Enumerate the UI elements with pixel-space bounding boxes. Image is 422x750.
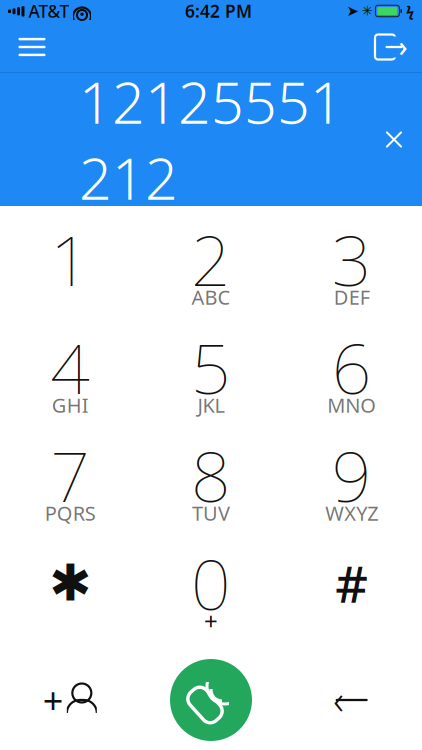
staticText: 6 xyxy=(332,321,372,413)
staticText: ✳ xyxy=(361,3,372,18)
staticText: 2 xyxy=(191,213,231,305)
staticText: ✱ xyxy=(49,554,91,612)
button[interactable]: 6 xyxy=(281,322,422,430)
staticText: PQRS xyxy=(45,500,96,526)
staticText: + xyxy=(204,605,218,637)
staticText: + xyxy=(43,676,64,724)
button[interactable]: Add contact xyxy=(0,654,141,746)
button[interactable]: 7 xyxy=(0,430,141,538)
button[interactable]: ✱ xyxy=(0,538,141,646)
staticText: GHI xyxy=(52,392,89,418)
staticText: › xyxy=(398,27,407,65)
staticText: DEF xyxy=(334,284,370,310)
button[interactable]: 5 xyxy=(141,322,281,430)
staticText: 6:42 PM xyxy=(185,0,252,22)
staticText: 0 xyxy=(191,537,231,629)
button[interactable]: 1 xyxy=(0,214,141,322)
staticText: AT&T xyxy=(28,0,69,22)
button[interactable]: Delete all xyxy=(366,111,422,167)
staticText: 12125551212 xyxy=(79,63,343,216)
staticText: JKL xyxy=(197,392,224,418)
button[interactable]: 2 xyxy=(141,214,281,322)
staticText: ABC xyxy=(191,284,230,310)
button[interactable]: Delete xyxy=(281,654,422,746)
button[interactable]: Sign out xyxy=(364,25,416,69)
button[interactable]: 8 xyxy=(141,430,281,538)
staticText: 1 xyxy=(50,213,90,305)
button[interactable]: 0 xyxy=(141,538,281,646)
staticText: 9 xyxy=(332,429,372,521)
staticText: MNO xyxy=(327,392,376,418)
staticText: TUV xyxy=(192,500,230,526)
staticText: # xyxy=(335,549,368,617)
button[interactable]: Call xyxy=(141,654,281,746)
staticText: ➤ xyxy=(346,3,358,19)
staticText: WXYZ xyxy=(325,500,378,526)
staticText: 5 xyxy=(191,321,231,413)
button[interactable]: # xyxy=(281,538,422,646)
staticText: ‹ xyxy=(333,672,344,725)
button[interactable]: Menu xyxy=(6,25,58,69)
button[interactable]: 9 xyxy=(281,430,422,538)
staticText: 8 xyxy=(191,429,231,521)
button[interactable]: 4 xyxy=(0,322,141,430)
staticText: ϟ xyxy=(406,1,414,21)
button[interactable]: 3 xyxy=(281,214,422,322)
staticText: 7 xyxy=(50,429,90,521)
staticText: 4 xyxy=(50,321,90,413)
staticText: 3 xyxy=(332,213,372,305)
